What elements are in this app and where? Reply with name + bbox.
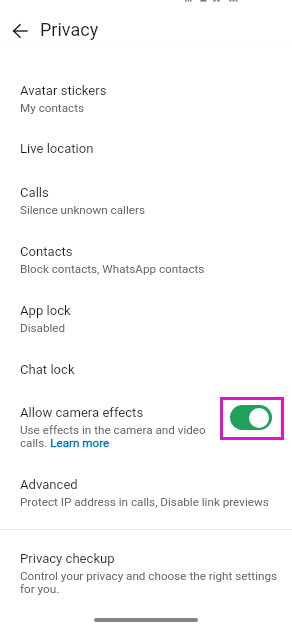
staticText: Disabled xyxy=(20,321,66,335)
button[interactable]: Allow camera effects xyxy=(0,380,292,452)
button[interactable]: Back xyxy=(3,14,36,47)
staticText: Privacy checkup xyxy=(20,551,115,566)
staticText: Avatar stickers xyxy=(20,83,107,98)
button[interactable]: Avatar stickers xyxy=(0,58,292,116)
staticText: Control your privacy and choose the righ… xyxy=(20,569,278,596)
button[interactable]: Advanced xyxy=(0,452,292,511)
button[interactable]: Allow camera effects toggle xyxy=(230,405,272,430)
staticText: My contacts xyxy=(20,101,85,115)
staticText: Contacts xyxy=(20,244,73,259)
button[interactable]: Contacts xyxy=(0,219,292,278)
button[interactable]: Privacy checkup xyxy=(0,540,292,604)
staticText: Advanced xyxy=(20,477,78,492)
staticText: App lock xyxy=(20,303,71,318)
staticText: Silence unknown callers xyxy=(20,203,145,217)
button[interactable]: Live location xyxy=(0,116,292,160)
staticText: Privacy xyxy=(40,19,99,40)
staticText: Block contacts, WhatsApp contacts xyxy=(20,262,205,276)
staticText: Live location xyxy=(20,141,94,156)
button[interactable]: Chat lock xyxy=(0,337,292,380)
staticText: Use effects in the camera and video call… xyxy=(20,423,210,450)
staticText: Calls xyxy=(20,185,49,200)
button[interactable]: Calls xyxy=(0,160,292,219)
staticText: Protect IP address in calls, Disable lin… xyxy=(20,495,269,509)
staticText: Chat lock xyxy=(20,362,75,377)
staticText: Allow camera effects xyxy=(20,405,144,420)
button[interactable]: App lock xyxy=(0,278,292,337)
